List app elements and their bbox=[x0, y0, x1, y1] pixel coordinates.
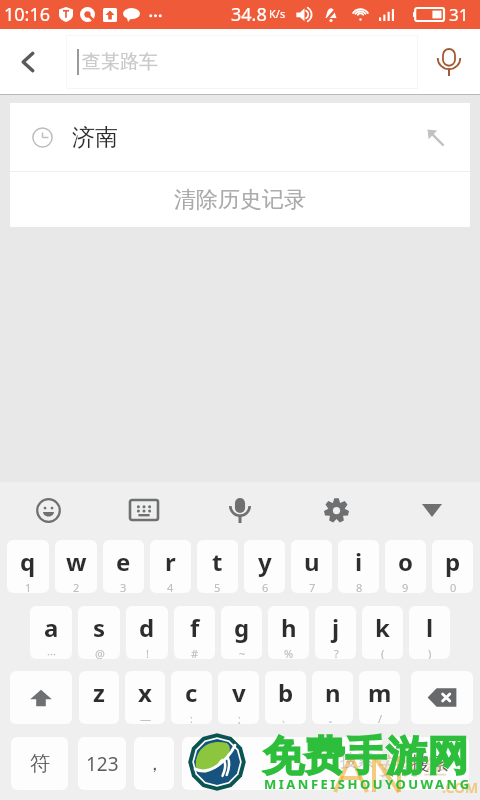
staticText: a bbox=[44, 611, 59, 644]
button[interactable]: 搜索 bbox=[390, 737, 469, 790]
button[interactable]: Shift bbox=[10, 671, 72, 724]
button[interactable]: f bbox=[174, 606, 215, 659]
button[interactable]: m bbox=[359, 671, 400, 724]
button[interactable]: k bbox=[362, 606, 403, 659]
button[interactable]: Back bbox=[0, 29, 55, 95]
staticText: j bbox=[332, 611, 340, 644]
staticText: K/s bbox=[269, 6, 286, 21]
staticText: 1 bbox=[25, 580, 32, 593]
button[interactable]: Keyboard layout bbox=[96, 482, 192, 538]
button[interactable]: b bbox=[265, 671, 306, 724]
staticText: p bbox=[445, 545, 461, 578]
staticText: # bbox=[191, 646, 199, 659]
staticText: y bbox=[258, 545, 272, 578]
staticText: 4 bbox=[167, 580, 174, 593]
button[interactable]: c bbox=[171, 671, 212, 724]
staticText: 符 bbox=[30, 751, 50, 776]
staticText: ; bbox=[238, 711, 241, 724]
button[interactable]: v bbox=[218, 671, 259, 724]
staticText: h bbox=[281, 611, 297, 644]
button[interactable]: a bbox=[30, 606, 72, 659]
staticText: f bbox=[190, 611, 200, 644]
button[interactable]: ， bbox=[134, 737, 174, 790]
staticText: d bbox=[139, 611, 155, 644]
staticText: l bbox=[426, 611, 434, 644]
staticText: 3 bbox=[120, 580, 127, 593]
staticText: 搜索 bbox=[411, 752, 449, 776]
staticText: 免费手游网 bbox=[263, 731, 468, 783]
staticText: k bbox=[375, 611, 390, 644]
staticText: b bbox=[278, 676, 294, 709]
staticText: 31 bbox=[449, 3, 469, 26]
button[interactable]: p bbox=[432, 540, 473, 593]
staticText: i bbox=[355, 545, 363, 578]
staticText: c bbox=[185, 676, 198, 709]
button[interactable]: Settings bbox=[288, 482, 384, 538]
staticText: q bbox=[20, 545, 36, 578]
button[interactable]: i bbox=[338, 540, 379, 593]
staticText: 9 bbox=[402, 580, 409, 593]
staticText: 。 bbox=[328, 711, 339, 724]
staticText: m bbox=[368, 676, 392, 709]
button[interactable]: Emoji bbox=[0, 482, 96, 538]
staticText: r bbox=[165, 545, 176, 578]
staticText: — bbox=[140, 711, 151, 724]
button[interactable]: 123 bbox=[78, 737, 126, 790]
staticText: 6 bbox=[262, 580, 269, 593]
button[interactable]: Voice input bbox=[192, 482, 288, 538]
button[interactable]: e bbox=[103, 540, 144, 593]
button[interactable]: l bbox=[409, 606, 450, 659]
staticText: t bbox=[212, 545, 223, 578]
staticText: 8 bbox=[356, 580, 363, 593]
staticText: ~ bbox=[239, 646, 246, 659]
staticText: 、 bbox=[281, 711, 292, 724]
staticText: .COM bbox=[442, 778, 479, 797]
staticText: v bbox=[232, 676, 246, 709]
staticText: / bbox=[378, 711, 383, 724]
button[interactable]: r bbox=[150, 540, 191, 593]
staticText: @ bbox=[95, 646, 105, 659]
staticText: 0 bbox=[450, 580, 457, 593]
button[interactable]: q bbox=[7, 540, 49, 593]
staticText: w bbox=[66, 545, 87, 578]
staticText: u bbox=[304, 545, 320, 578]
staticText: 安务丝 bbox=[378, 752, 447, 781]
staticText: z bbox=[93, 676, 105, 709]
button[interactable]: Hide keyboard bbox=[384, 482, 480, 538]
staticText: 34.8 bbox=[231, 2, 267, 27]
button[interactable]: w bbox=[55, 540, 97, 593]
button[interactable]: x bbox=[125, 671, 165, 724]
button[interactable]: o bbox=[385, 540, 426, 593]
staticText: 济南 bbox=[72, 123, 118, 152]
button[interactable]: 清除历史记录 bbox=[10, 172, 470, 227]
button[interactable]: 符 bbox=[11, 737, 68, 790]
button[interactable]: n bbox=[312, 671, 353, 724]
staticText: 123 bbox=[86, 751, 119, 777]
button[interactable]: u bbox=[291, 540, 332, 593]
staticText: ? bbox=[334, 646, 339, 659]
staticText: s bbox=[93, 611, 106, 644]
staticText: ( bbox=[381, 646, 385, 659]
button[interactable] bbox=[182, 737, 382, 790]
staticText: 搜索 bbox=[340, 750, 374, 771]
button[interactable]: j bbox=[315, 606, 356, 659]
button[interactable]: s bbox=[78, 606, 120, 659]
staticText: ) bbox=[428, 646, 432, 659]
button[interactable]: h bbox=[268, 606, 309, 659]
staticText: 2 bbox=[73, 580, 80, 593]
staticText: % bbox=[284, 646, 294, 659]
staticText: 7 bbox=[309, 580, 316, 593]
button[interactable]: d bbox=[126, 606, 168, 659]
staticText: x bbox=[138, 676, 152, 709]
button[interactable]: t bbox=[197, 540, 238, 593]
button[interactable]: g bbox=[221, 606, 262, 659]
button[interactable]: y bbox=[244, 540, 285, 593]
button[interactable]: Backspace bbox=[411, 671, 473, 724]
button[interactable]: Voice search bbox=[418, 29, 480, 95]
staticText: 5 bbox=[214, 580, 221, 593]
button[interactable]: z bbox=[79, 671, 119, 724]
button[interactable]: 济南 bbox=[10, 103, 470, 171]
staticText: ! bbox=[146, 646, 149, 659]
staticText: ··· bbox=[47, 646, 56, 659]
